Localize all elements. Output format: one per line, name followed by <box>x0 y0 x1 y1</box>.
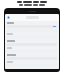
button[interactable] <box>7 47 57 53</box>
button[interactable] <box>26 16 39 19</box>
button[interactable] <box>7 54 57 60</box>
button[interactable] <box>7 61 57 67</box>
button[interactable]: Menu <box>7 16 10 19</box>
button[interactable] <box>7 40 57 46</box>
button[interactable] <box>7 33 57 39</box>
button[interactable] <box>7 22 57 28</box>
